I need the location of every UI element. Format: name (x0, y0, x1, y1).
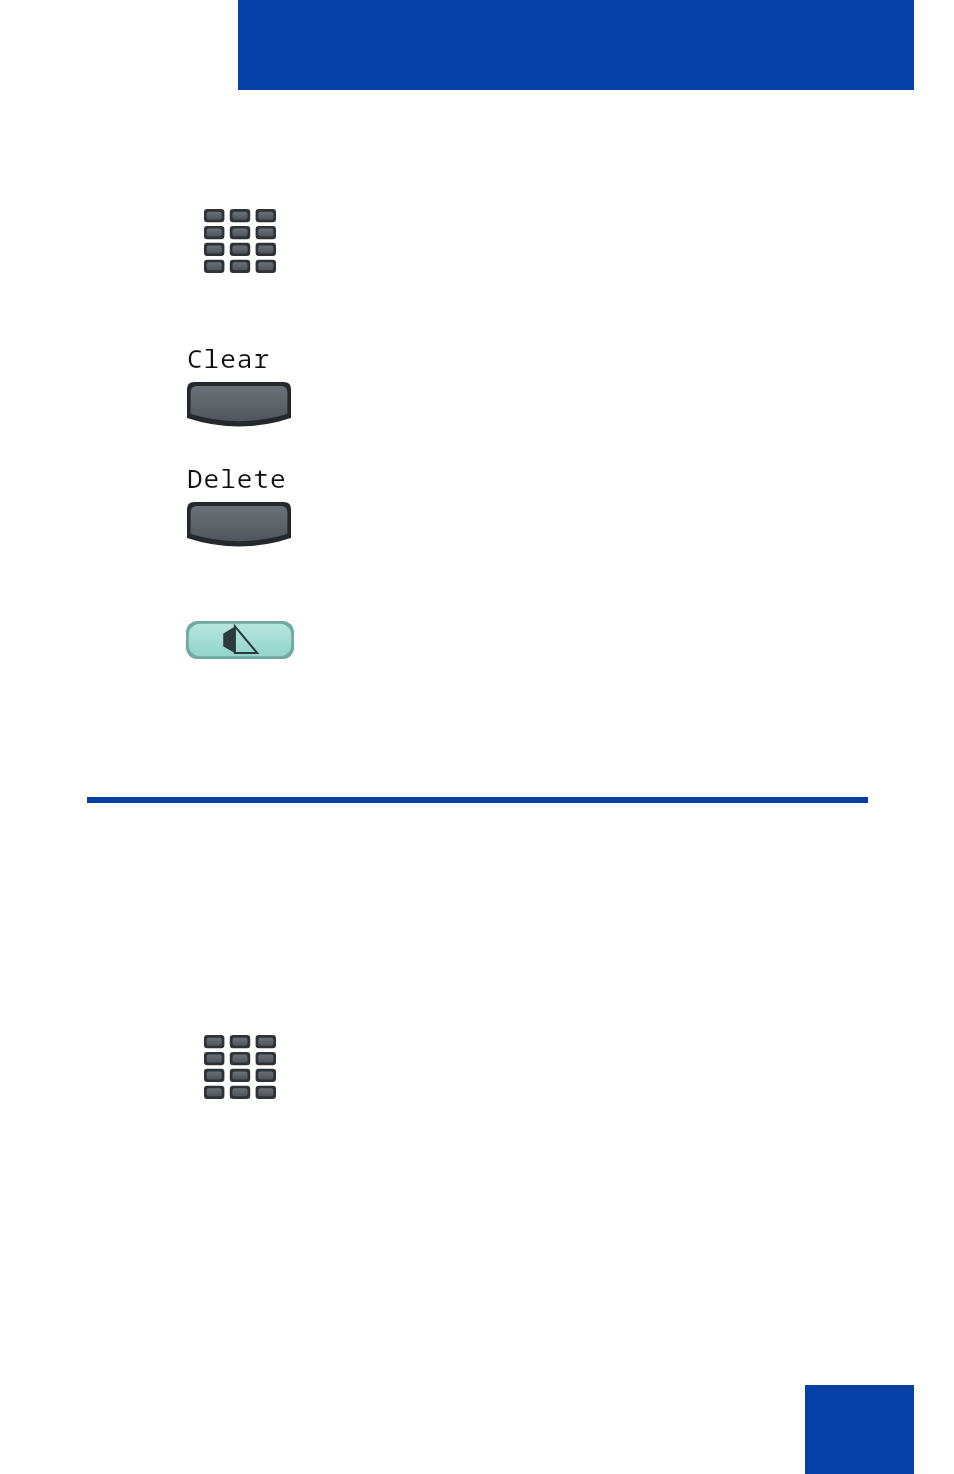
staticText: Clear (187, 340, 271, 375)
button[interactable]: Dial pad (204, 1035, 276, 1099)
button[interactable] (187, 382, 291, 432)
button[interactable] (187, 502, 291, 552)
button[interactable]: Speaker (186, 621, 294, 659)
button[interactable]: Dial pad (204, 209, 276, 273)
staticText: Delete (187, 460, 287, 495)
